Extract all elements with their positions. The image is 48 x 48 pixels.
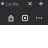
button[interactable]: Tabs (19, 13, 31, 23)
staticText: Lucidity (5, 1, 18, 6)
button[interactable]: Share (5, 13, 17, 23)
button[interactable]: Close tab (26, 0, 34, 8)
button[interactable]: More (33, 13, 45, 23)
button[interactable]: New tab (37, 0, 45, 8)
